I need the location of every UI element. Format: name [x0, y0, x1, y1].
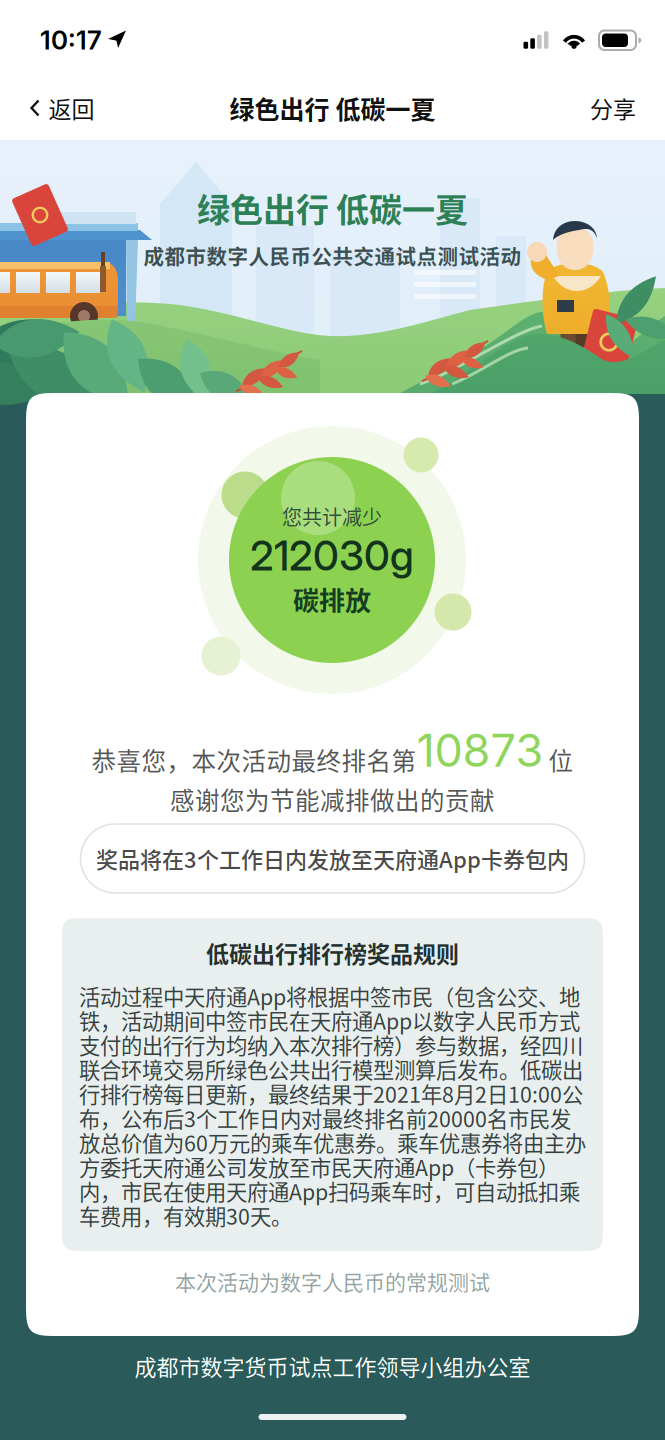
staticText: 成都市数字人民币公共交通试点测试活动 — [143, 241, 521, 270]
staticText: 碳排放 — [293, 580, 371, 618]
staticText: 212030g — [250, 531, 414, 580]
staticText: 感谢您为节能减排做出的贡献 — [170, 781, 495, 817]
staticText: 位 — [543, 742, 573, 777]
staticText: 10:17 — [40, 24, 102, 56]
staticText: 奖品将在3个工作日内发放至天府通App卡券包内 — [96, 843, 569, 874]
staticText: 您共计减少 — [282, 502, 382, 531]
staticText: 绿色出行 低碳一夏 — [229, 90, 435, 126]
staticText: 恭喜您，本次活动最终排名第 — [91, 742, 416, 777]
staticText: 成都市数字货币试点工作领导小组办公室 — [134, 1350, 530, 1382]
staticText: 分享 — [590, 91, 636, 125]
staticText: 活动过程中天府通App将根据中签市民（包含公交、地铁，活动期间中签市民在天府通A… — [79, 980, 586, 1231]
button[interactable]: 分享 — [574, 77, 652, 139]
staticText: 本次活动为数字人民币的常规测试 — [175, 1266, 490, 1296]
staticText: 低碳出行排行榜奖品规则 — [206, 936, 459, 969]
staticText: 10873 — [416, 723, 543, 777]
staticText: 返回 — [48, 91, 94, 125]
button[interactable]: 返回 — [13, 77, 110, 139]
staticText: 绿色出行 低碳一夏 — [197, 184, 468, 232]
